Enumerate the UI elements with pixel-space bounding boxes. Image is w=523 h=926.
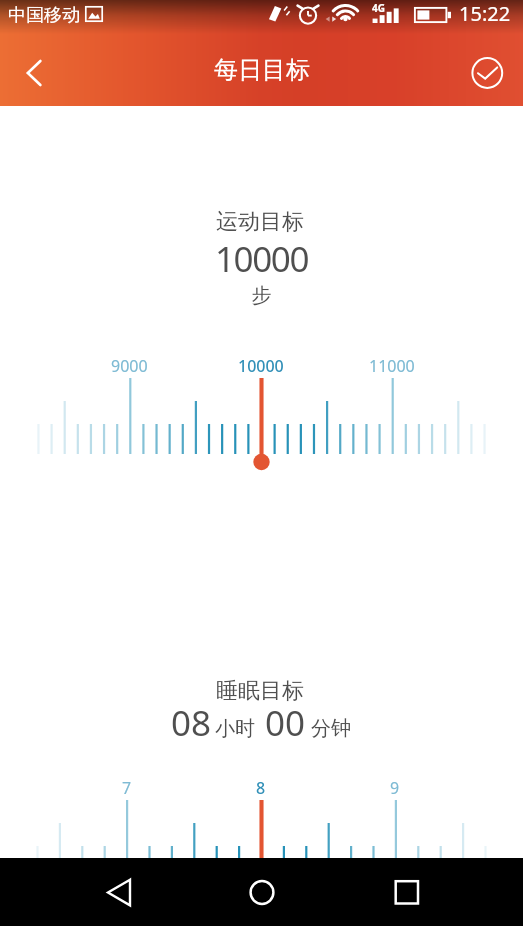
staticText: 中国移动 (8, 4, 80, 27)
button[interactable]: Recents (372, 858, 440, 926)
staticText: 小时 (215, 716, 255, 741)
staticText: 08 (171, 699, 212, 747)
staticText: 4G (372, 1, 385, 15)
button[interactable]: Back (0, 45, 56, 101)
staticText: 8 (256, 777, 266, 799)
staticText: 7 (122, 777, 132, 799)
button[interactable]: Confirm (463, 43, 523, 103)
staticText: 运动目标 (216, 208, 304, 236)
staticText: 10000 (0, 235, 523, 283)
staticText: 9000 (111, 355, 148, 377)
staticText: 每日目标 (214, 55, 310, 85)
staticText: 睡眠目标 (216, 677, 304, 705)
staticText: 分钟 (311, 716, 351, 741)
staticText: 15:22 (459, 0, 511, 27)
staticText: 9 (390, 777, 400, 799)
staticText: 步 (0, 283, 523, 308)
staticText: 10000 (238, 355, 284, 377)
staticText: 00 (265, 699, 306, 747)
button[interactable]: Home (227, 858, 295, 926)
staticText: 11000 (369, 355, 415, 377)
button[interactable]: Back (85, 858, 153, 926)
